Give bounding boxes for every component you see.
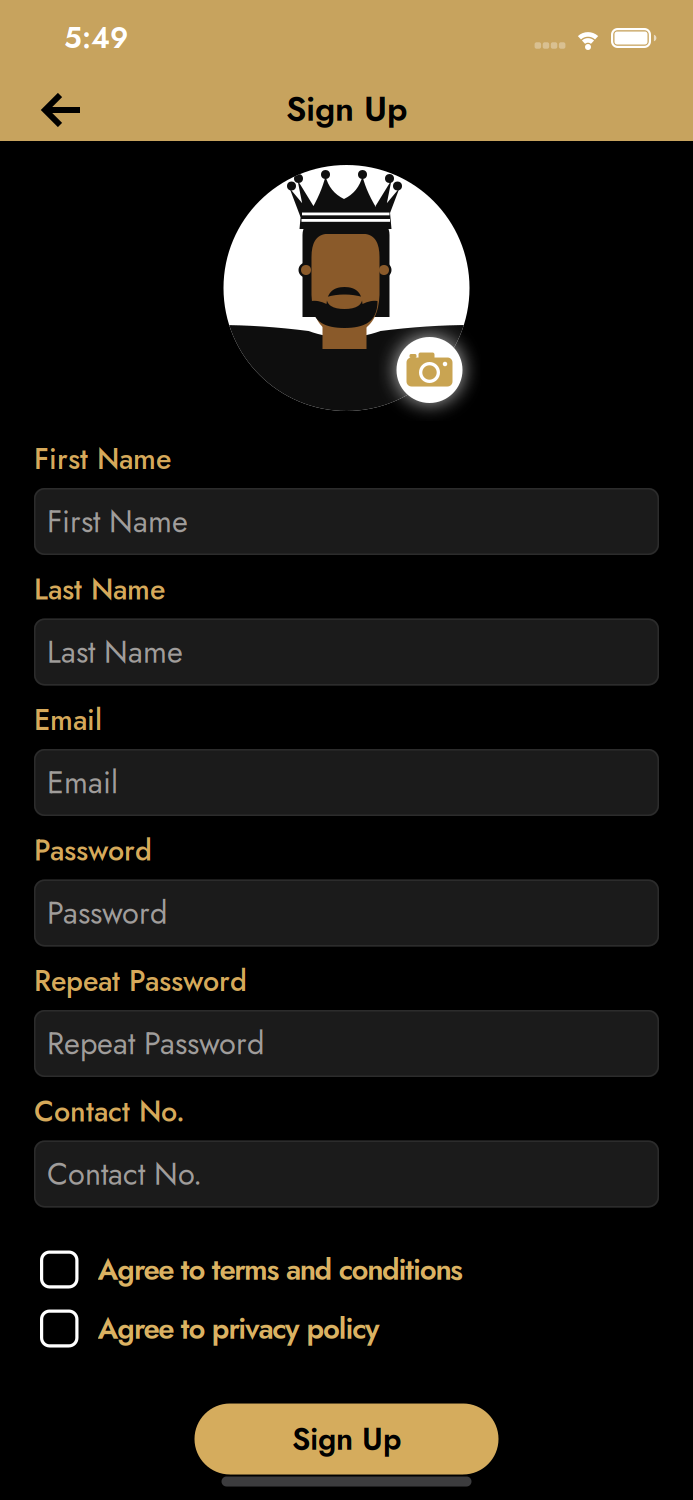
button[interactable]: Email text field bbox=[34, 749, 659, 816]
button[interactable]: Back bbox=[32, 85, 92, 135]
button[interactable]: Last Name text field bbox=[34, 618, 659, 685]
staticText: Email bbox=[34, 699, 102, 741]
staticText: Sign Up bbox=[292, 1417, 401, 1461]
staticText: Password bbox=[34, 830, 152, 871]
staticText: Contact No. bbox=[47, 1152, 202, 1196]
staticText: Contact No. bbox=[34, 1091, 185, 1132]
staticText: First Name bbox=[34, 438, 171, 480]
button[interactable]: Repeat Password text field bbox=[34, 1010, 659, 1077]
button[interactable]: First Name text field bbox=[34, 488, 659, 555]
staticText: Last Name bbox=[47, 630, 183, 674]
staticText: First Name bbox=[47, 499, 188, 544]
staticText: Agree to privacy policy bbox=[97, 1307, 380, 1350]
staticText: Sign Up bbox=[286, 84, 407, 133]
button[interactable]: Agree to terms and conditions bbox=[40, 1250, 463, 1288]
button[interactable]: Change profile photo bbox=[396, 337, 462, 403]
staticText: Last Name bbox=[34, 569, 165, 610]
button[interactable]: Agree to privacy policy bbox=[40, 1309, 380, 1347]
staticText: 5:49 bbox=[64, 17, 128, 59]
button[interactable]: Contact No. text field bbox=[34, 1140, 659, 1207]
staticText: Email bbox=[47, 760, 118, 805]
button[interactable]: Sign Up bbox=[194, 1403, 498, 1474]
staticText: Repeat Password bbox=[47, 1021, 264, 1066]
button[interactable]: Password text field bbox=[34, 879, 659, 946]
staticText: Repeat Password bbox=[34, 960, 247, 1002]
staticText: Agree to terms and conditions bbox=[97, 1248, 463, 1291]
staticText: Password bbox=[47, 891, 167, 935]
